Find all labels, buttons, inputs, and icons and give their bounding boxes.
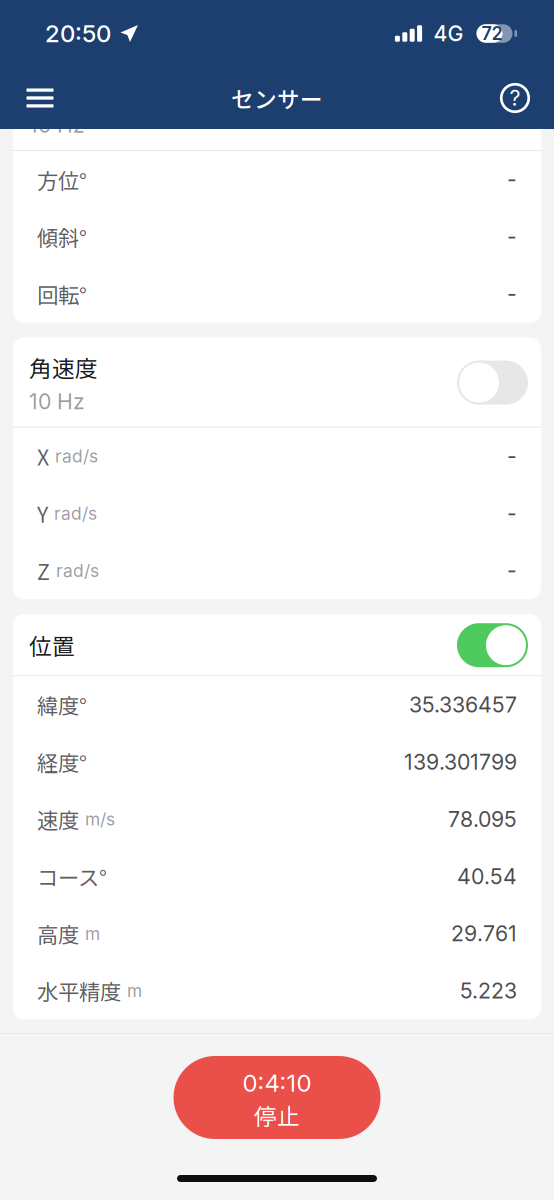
staticText: - <box>507 281 517 307</box>
button[interactable]: 傾斜° <box>13 208 541 265</box>
staticText: rad/s <box>56 560 99 581</box>
staticText: 0:4:10 <box>242 1069 311 1098</box>
button[interactable]: Turn on 角速度 <box>457 361 528 405</box>
staticText: 29.761 <box>451 921 517 946</box>
staticText: 20:50 <box>45 19 111 48</box>
staticText: - <box>507 443 517 469</box>
staticText: 10 Hz <box>29 112 85 138</box>
staticText: rad/s <box>54 503 97 524</box>
button[interactable]: 水平精度 <box>13 962 541 1019</box>
staticText: 78.095 <box>448 806 517 832</box>
staticText: 方位° <box>37 164 87 195</box>
staticText: X <box>37 441 49 472</box>
staticText: 停止 <box>254 1099 300 1131</box>
staticText: 72 <box>481 23 502 44</box>
staticText: センサー <box>231 82 323 114</box>
staticText: rad/s <box>55 446 98 467</box>
staticText: 経度° <box>37 747 87 777</box>
staticText: 4G <box>433 21 463 46</box>
staticText: 10 Hz <box>29 389 85 414</box>
button[interactable]: 速度 <box>13 791 541 848</box>
staticText: - <box>507 500 517 526</box>
button[interactable]: 緯度° <box>13 676 541 733</box>
staticText: Z <box>37 555 50 586</box>
button[interactable]: 高度 <box>13 905 541 962</box>
staticText: 緯度° <box>37 689 87 720</box>
staticText: 速度 <box>37 804 79 835</box>
staticText: - <box>507 558 517 583</box>
staticText: 35.336457 <box>409 692 517 718</box>
staticText: 傾斜° <box>37 221 87 252</box>
staticText: m <box>85 923 100 944</box>
staticText: 角速度 <box>29 351 98 384</box>
staticText: ? <box>509 85 520 111</box>
button[interactable]: Turn off 位置 <box>457 623 528 667</box>
staticText: 磁力計 <box>29 74 98 107</box>
staticText: - <box>507 167 517 192</box>
staticText: コース° <box>37 861 107 892</box>
staticText: 40.54 <box>457 863 517 889</box>
button[interactable]: 回転° <box>13 265 541 323</box>
button[interactable]: 経度° <box>13 733 541 791</box>
staticText: 5.223 <box>460 978 517 1004</box>
staticText: m/s <box>85 809 115 830</box>
staticText: 139.301799 <box>404 749 517 775</box>
staticText: m <box>127 980 142 1001</box>
button[interactable]: Z <box>13 542 541 599</box>
staticText: Y <box>37 498 48 529</box>
button[interactable]: Turn on 磁力計 <box>457 84 528 128</box>
button[interactable]: Menu <box>9 67 71 129</box>
staticText: 位置 <box>29 629 75 662</box>
staticText: - <box>507 224 517 250</box>
staticText: 高度 <box>37 918 79 949</box>
button[interactable]: Help <box>484 67 546 129</box>
button[interactable]: 方位° <box>13 151 541 208</box>
button[interactable]: Y <box>13 485 541 542</box>
staticText: 水平精度 <box>37 975 121 1006</box>
staticText: 回転° <box>37 279 87 309</box>
button[interactable]: コース° <box>13 848 541 905</box>
button[interactable]: X <box>13 428 541 485</box>
button[interactable]: 0:4:10 <box>173 1056 380 1139</box>
